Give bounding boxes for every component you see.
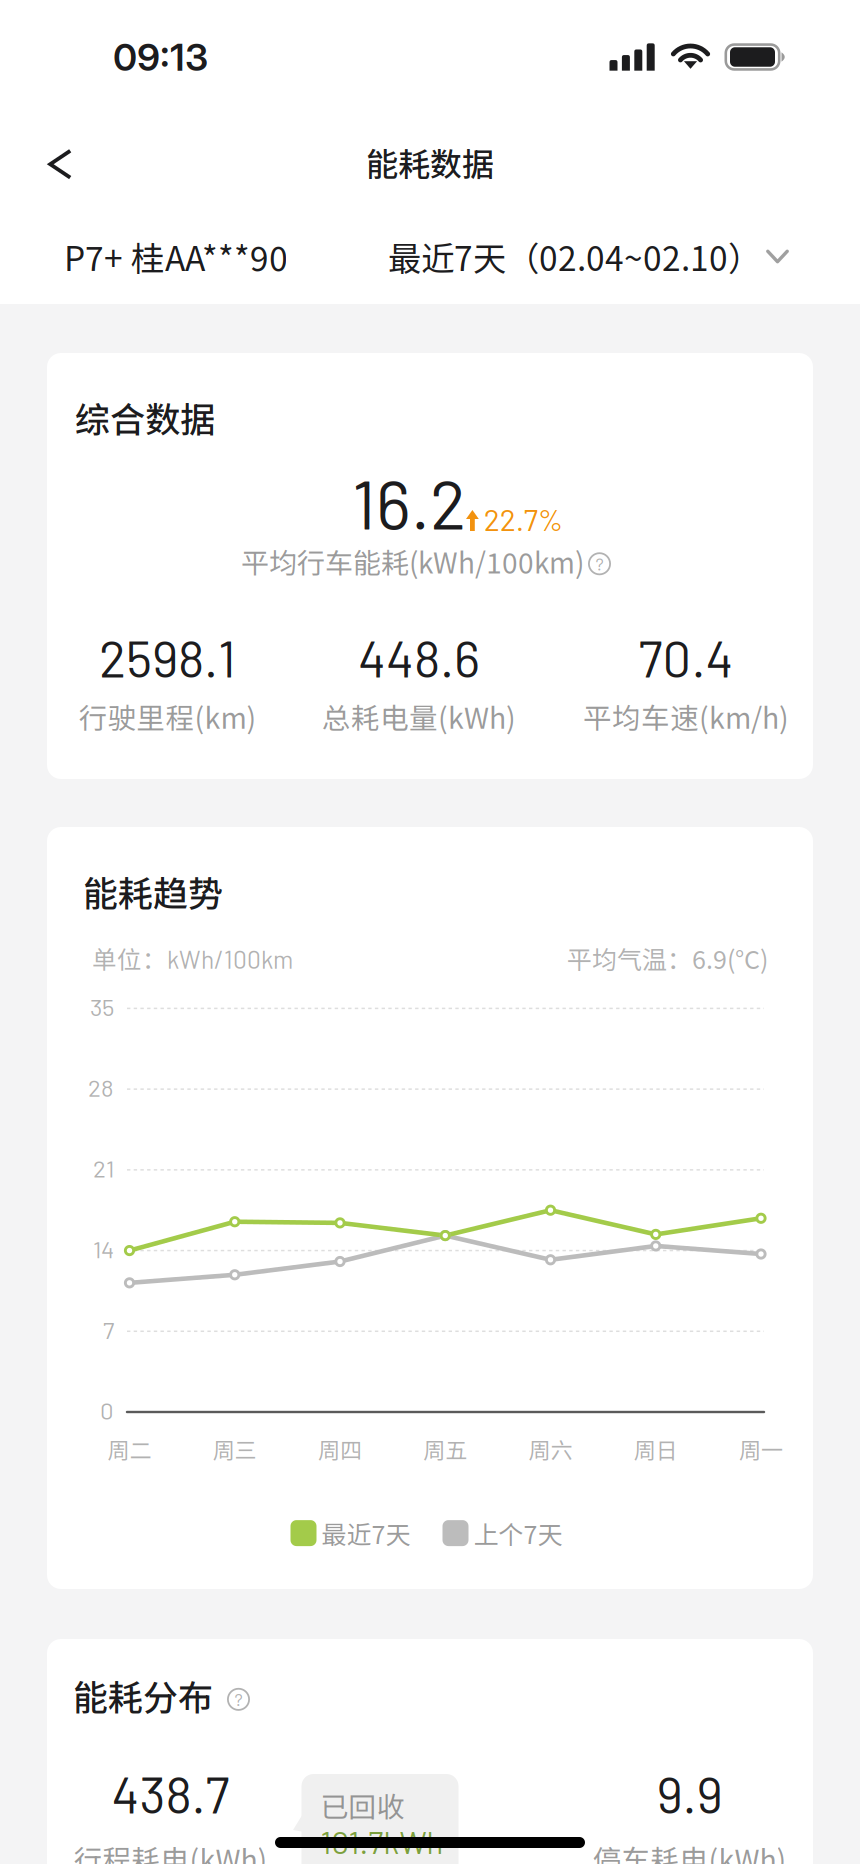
- staticText: 22.7%: [484, 501, 563, 537]
- staticText: 上个7天: [473, 1515, 562, 1551]
- staticText: 0: [100, 1396, 114, 1424]
- staticText: 周四: [318, 1433, 362, 1465]
- staticText: 21: [93, 1153, 114, 1182]
- staticText: 7: [103, 1315, 114, 1344]
- staticText: 101.7kWh: [320, 1823, 443, 1860]
- staticText: 438.7: [111, 1763, 229, 1824]
- staticText: 周二: [107, 1433, 151, 1465]
- staticText: 最近7天（02.04~02.10）: [388, 232, 761, 281]
- staticText: 70.4: [638, 627, 733, 688]
- button[interactable]: Help: [213, 1680, 250, 1711]
- staticText: 2598.1: [99, 627, 236, 688]
- staticText: 16.2: [352, 462, 466, 543]
- staticText: 停车耗电(kWh): [592, 1838, 786, 1864]
- staticText: 能耗趋势: [83, 866, 223, 917]
- staticText: 周三: [213, 1433, 257, 1465]
- staticText: 平均车速(km/h): [583, 696, 789, 737]
- staticText: ?: [234, 1688, 242, 1710]
- staticText: 最近7天: [321, 1515, 410, 1551]
- staticText: 周日: [634, 1433, 678, 1465]
- staticText: 周一: [739, 1433, 783, 1465]
- button[interactable]: 最近7天（02.04~02.10）: [388, 232, 789, 281]
- staticText: ?: [595, 552, 603, 574]
- staticText: 35: [90, 992, 114, 1021]
- staticText: 平均行车能耗(kWh/100km): [241, 541, 584, 581]
- staticText: 能耗分布: [73, 1670, 213, 1721]
- staticText: 周五: [423, 1433, 467, 1465]
- staticText: 28: [88, 1073, 114, 1101]
- staticText: 综合数据: [75, 392, 215, 443]
- staticText: 14: [93, 1234, 114, 1263]
- staticText: 周六: [528, 1433, 572, 1465]
- staticText: 448.6: [358, 627, 480, 688]
- staticText: 已回收: [320, 1785, 404, 1825]
- staticText: 能耗数据: [366, 139, 494, 185]
- button[interactable]: Back: [24, 127, 97, 202]
- staticText: P7+ 桂AA***90: [64, 232, 288, 281]
- staticText: 单位：kWh/100km: [92, 941, 293, 975]
- staticText: 行驶里程(km): [78, 696, 256, 737]
- staticText: 09:13: [113, 34, 208, 80]
- button[interactable]: Help: [584, 547, 611, 575]
- staticText: 总耗电量(kWh): [322, 696, 516, 737]
- staticText: 9.9: [656, 1763, 722, 1824]
- staticText: 平均气温：6.9(°C): [567, 940, 768, 976]
- staticText: 行程耗电(kWh): [73, 1838, 267, 1864]
